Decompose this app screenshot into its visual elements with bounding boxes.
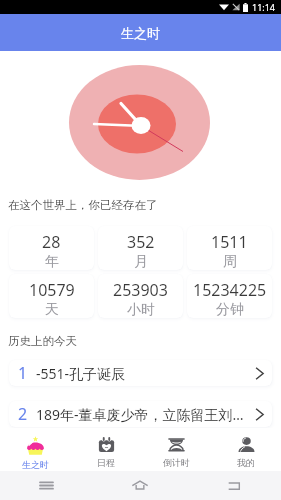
staticText: -551-孔子诞辰	[36, 364, 255, 383]
staticText: 28	[42, 231, 61, 253]
staticText: 分钟	[216, 301, 244, 318]
button[interactable]: 倒计时	[141, 428, 211, 471]
button[interactable]: 生之时	[0, 428, 71, 471]
button[interactable]: 352	[98, 226, 183, 270]
staticText: 11:14	[252, 1, 276, 13]
staticText: 在这个世界上，你已经存在了	[8, 198, 158, 212]
staticText: 1	[18, 362, 28, 384]
staticText: 15234225	[193, 279, 267, 301]
staticText: 1511	[211, 231, 248, 253]
staticText: 倒计时	[163, 457, 190, 468]
button[interactable]: 10579	[9, 274, 94, 318]
button[interactable]: 日程	[71, 428, 141, 471]
staticText: 日程	[97, 457, 115, 468]
button[interactable]: 我的	[211, 428, 281, 471]
button[interactable]: 2	[9, 401, 272, 427]
staticText: 352	[127, 231, 155, 253]
staticText: 10579	[29, 279, 75, 301]
staticText: 253903	[113, 279, 168, 301]
button[interactable]: 28	[9, 226, 94, 270]
button[interactable]: Recents	[0, 471, 93, 500]
staticText: 天	[45, 301, 59, 318]
staticText: 2	[18, 403, 28, 425]
button[interactable]: Home	[93, 471, 187, 500]
staticText: 生之时	[121, 25, 160, 41]
staticText: 月	[134, 253, 148, 270]
button[interactable]: 1511	[187, 226, 272, 270]
button[interactable]: 253903	[98, 274, 183, 318]
staticText: 小时	[127, 301, 155, 318]
button[interactable]: Back	[187, 471, 281, 500]
staticText: 生之时	[22, 459, 49, 470]
staticText: 周	[223, 253, 237, 270]
button[interactable]: 1	[9, 360, 272, 386]
staticText: 历史上的今天	[8, 334, 77, 348]
staticText: 189年-董卓废少帝，立陈留王刘…	[36, 405, 255, 424]
button[interactable]: 15234225	[187, 274, 272, 318]
staticText: 年	[45, 253, 59, 270]
staticText: 我的	[237, 457, 255, 468]
